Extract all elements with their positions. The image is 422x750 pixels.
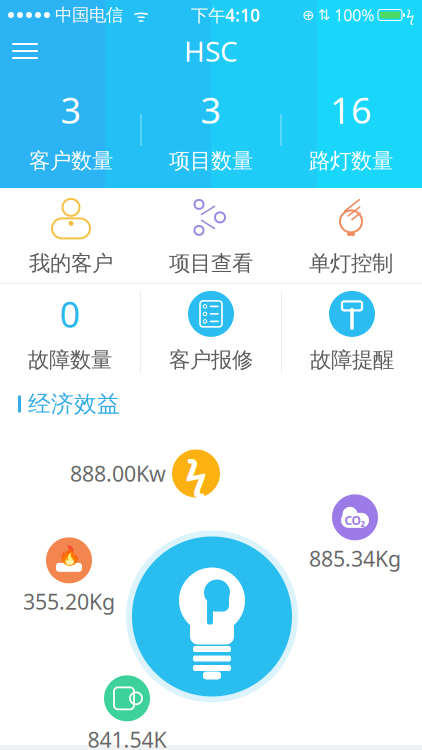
staticText: 885.34Kg <box>309 544 401 573</box>
staticText: 客户报修 <box>169 347 253 373</box>
staticText: 下午4:10 <box>191 3 260 26</box>
staticText: 841.54K <box>87 725 166 750</box>
button[interactable]: Menu <box>0 29 50 73</box>
staticText: 项目数量 <box>169 148 253 174</box>
staticText: ⊕ <box>302 7 314 23</box>
staticText: 0 <box>59 290 80 338</box>
button[interactable]: 0 <box>0 284 140 379</box>
staticText: 3 <box>60 86 81 134</box>
staticText: 🔥 <box>57 545 80 566</box>
staticText: 我的客户 <box>29 250 113 277</box>
staticText: ⇅ <box>318 7 330 23</box>
staticText: 3 <box>200 86 221 134</box>
staticText: 355.20Kg <box>23 587 115 616</box>
staticText: ᯤ <box>123 3 149 26</box>
staticText: 16 <box>330 86 372 134</box>
button[interactable]: 我的客户 <box>1 188 141 283</box>
staticText: CO₂ <box>344 512 365 528</box>
staticText: 故障提醒 <box>310 347 394 373</box>
staticText: 路灯数量 <box>309 148 393 174</box>
staticText: 客户数量 <box>29 148 113 174</box>
staticText: 经济效益 <box>28 390 120 418</box>
staticText: 项目查看 <box>169 250 253 277</box>
button[interactable]: 单灯控制 <box>281 188 421 283</box>
button[interactable]: 客户报修 <box>141 284 281 379</box>
staticText: 100% <box>334 4 374 26</box>
staticText: 单灯控制 <box>309 250 393 277</box>
button[interactable]: 项目查看 <box>141 188 281 283</box>
button[interactable]: 故障提醒 <box>282 284 422 379</box>
staticText: HSC <box>184 32 238 70</box>
staticText: 888.00Kw <box>70 459 166 488</box>
staticText: ϟ <box>185 447 207 500</box>
staticText: 故障数量 <box>28 347 112 373</box>
staticText: ϟ <box>406 5 414 25</box>
staticText: 中国电信 <box>50 4 123 26</box>
